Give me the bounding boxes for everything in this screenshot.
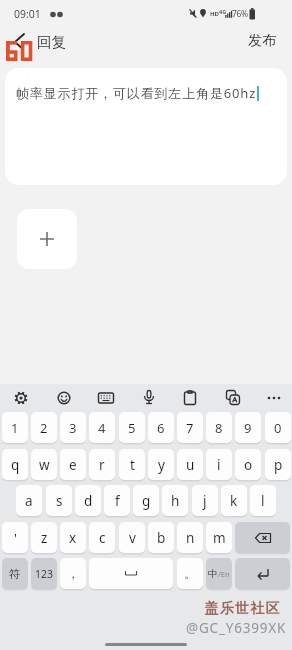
staticText: x [69,529,77,547]
button[interactable]: v [119,522,145,553]
staticText: 符 [9,567,21,581]
button[interactable]: a [16,485,42,516]
button[interactable]: u [177,449,203,480]
button[interactable]: 1 [2,412,28,443]
button[interactable]: z [31,522,57,553]
button[interactable] [174,384,206,412]
staticText: 回复 [37,33,66,51]
staticText: q [11,456,20,474]
button[interactable]: 发布 [238,28,286,54]
button[interactable]: 符 [2,558,28,589]
button[interactable]: n [177,522,203,553]
button[interactable]: t [119,449,145,480]
button[interactable]: ， [60,558,86,589]
button[interactable]: p [265,449,291,480]
button[interactable]: e [60,449,86,480]
button[interactable]: g [133,485,159,516]
button[interactable] [258,384,290,412]
button[interactable] [217,384,249,412]
button[interactable]: o [235,449,261,480]
button[interactable] [133,384,165,412]
button[interactable]: r [89,449,115,480]
button[interactable]: 9 [235,412,261,443]
staticText: y [158,456,165,474]
staticText: t [130,456,135,474]
button[interactable]: l [250,485,276,516]
staticText: w [39,456,50,474]
staticText: ' [14,529,17,547]
staticText: 中 [208,568,218,580]
button[interactable]: f [104,485,130,516]
button[interactable] [235,558,290,589]
staticText: c [99,529,106,547]
button[interactable]: h [162,485,188,516]
button[interactable]: m [206,522,232,553]
staticText: 123 [35,567,54,581]
staticText: 4G [219,8,227,15]
staticText: ， [67,566,79,581]
button[interactable]: q [2,449,28,480]
button[interactable]: d [75,485,101,516]
button[interactable]: i [206,449,232,480]
staticText: o [244,456,253,474]
button[interactable]: j [192,485,218,516]
button[interactable]: c [89,522,115,553]
button[interactable]: 0 [265,412,291,443]
staticText: 1 [11,419,19,437]
staticText: i [217,456,221,474]
staticText: r [99,456,105,474]
button[interactable]: 2 [31,412,57,443]
staticText: e [69,456,77,474]
button[interactable] [6,31,32,53]
staticText: f [115,492,120,510]
staticText: 4 [98,419,106,437]
button[interactable]: 。 [177,558,203,589]
button[interactable]: s [46,485,72,516]
staticText: 7 [186,419,194,437]
button[interactable] [90,384,122,412]
button[interactable]: 3 [60,412,86,443]
button[interactable]: k [221,485,247,516]
button[interactable]: y [148,449,174,480]
button[interactable]: b [148,522,174,553]
staticText: 3 [69,419,77,437]
staticText: v [129,529,136,547]
button[interactable]: 4 [89,412,115,443]
button[interactable] [48,384,80,412]
button[interactable]: 中 [206,558,232,589]
button[interactable]: 6 [148,412,174,443]
staticText: 帧率显示打开，可以看到左上角是60hz [16,84,257,102]
button[interactable]: w [31,449,57,480]
staticText: u [186,456,195,474]
staticText: l [261,492,265,510]
staticText: z [41,529,48,547]
staticText: b [157,529,166,547]
staticText: /En [218,569,230,579]
button[interactable]: x [60,522,86,553]
staticText: a [25,492,33,510]
button[interactable] [89,558,173,589]
staticText: k [230,492,238,510]
button[interactable] [17,209,77,269]
button[interactable]: 8 [206,412,232,443]
button[interactable] [5,384,37,412]
button[interactable]: 帧率显示打开，可以看到左上角是60hz [5,68,287,185]
staticText: 76% [232,8,248,20]
button[interactable] [235,522,290,553]
staticText: 5 [128,419,136,437]
staticText: s [56,492,63,510]
staticText: 盖乐世社区 [204,600,280,618]
button[interactable]: 123 [31,558,57,589]
staticText: 09:01 [14,7,41,21]
button[interactable]: 7 [177,412,203,443]
staticText: 0 [274,419,282,437]
staticText: 。 [184,566,196,581]
button[interactable]: ' [2,522,28,553]
staticText: 6 [157,419,165,437]
staticText: d [84,492,93,510]
staticText: g [142,492,151,510]
staticText: p [274,456,283,474]
staticText: h [171,492,180,510]
staticText: HD [210,10,219,18]
button[interactable]: 5 [119,412,145,443]
